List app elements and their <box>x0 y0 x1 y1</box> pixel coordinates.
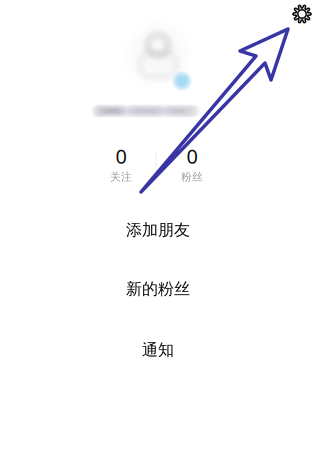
button[interactable]: Settings <box>287 0 316 29</box>
staticText: 粉丝 <box>181 170 203 183</box>
staticText: 关注 <box>110 170 132 183</box>
button[interactable]: 添加朋友 <box>0 204 316 256</box>
staticText: 新的粉丝 <box>126 279 190 299</box>
staticText: 0 <box>115 143 126 169</box>
button[interactable]: 新的粉丝 <box>0 263 316 315</box>
button[interactable]: 0 <box>87 142 155 188</box>
button[interactable]: 通知 <box>0 324 316 376</box>
staticText: 0 <box>186 143 197 169</box>
staticText: 添加朋友 <box>126 220 190 240</box>
staticText: 通知 <box>142 340 174 360</box>
button[interactable]: 0 <box>158 142 226 188</box>
